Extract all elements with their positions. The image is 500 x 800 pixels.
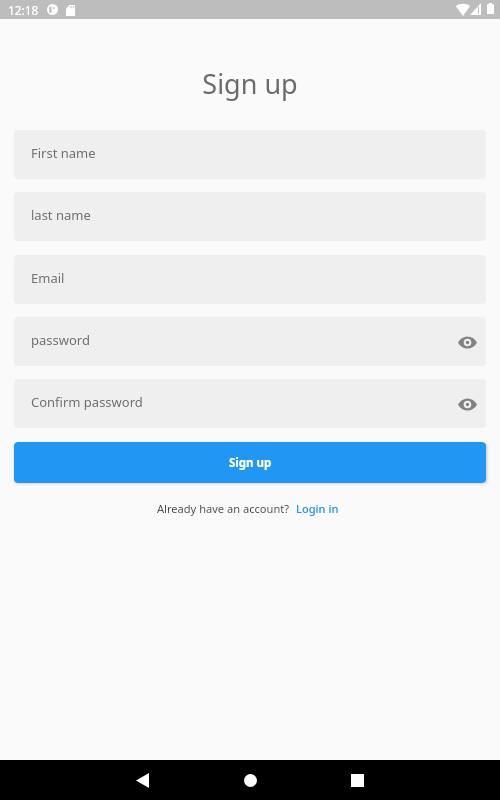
button[interactable]: Toggle password visibility (453, 390, 481, 418)
button[interactable]: First name (14, 130, 486, 179)
button[interactable]: Login in (294, 498, 341, 519)
button[interactable]: Email (14, 255, 486, 304)
staticText: First name (31, 144, 96, 162)
button[interactable]: Back (122, 760, 162, 800)
staticText: Already have an account? (157, 501, 290, 516)
staticText: Confirm password (31, 393, 143, 411)
staticText: last name (31, 206, 91, 224)
staticText: Sign up (229, 455, 272, 471)
button[interactable]: Confirm password (14, 379, 486, 428)
staticText: Sign up (0, 65, 500, 102)
button[interactable]: Home (230, 760, 270, 800)
staticText: 12:18 (8, 2, 39, 18)
button[interactable]: Toggle password visibility (453, 328, 481, 356)
staticText: Login in (296, 501, 339, 516)
staticText: password (31, 331, 90, 349)
staticText: Email (31, 269, 65, 287)
button[interactable]: last name (14, 192, 486, 241)
button[interactable]: password (14, 317, 486, 366)
button[interactable]: Sign up (14, 442, 486, 483)
button[interactable]: Recents (337, 760, 377, 800)
